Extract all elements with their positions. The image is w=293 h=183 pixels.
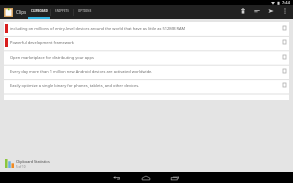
staticText: Every day more than 1 million new Androi… [10, 69, 279, 74]
staticText: Open marketplace for distributing your a… [10, 55, 279, 60]
button[interactable]: OPTIONS [74, 5, 96, 19]
button[interactable]: including on millions of entry-level dev… [4, 21, 289, 35]
staticText: including on millions of entry-level dev… [10, 26, 279, 31]
staticText: OPTIONS [78, 9, 92, 13]
button[interactable]: Share [264, 5, 278, 19]
staticText: Powerful development framework [10, 40, 279, 45]
button[interactable]: CLIPBOARD [28, 5, 50, 19]
button[interactable]: Every day more than 1 million new Androi… [4, 64, 289, 78]
button[interactable]: Sort [250, 5, 264, 19]
staticText: CLIPBOARD [31, 9, 48, 13]
button[interactable]: Copy [279, 50, 289, 64]
staticText: 7:44 [282, 0, 290, 5]
button[interactable]: Copy [279, 35, 289, 49]
button[interactable]: Copy [279, 21, 289, 35]
button[interactable]: Recent apps [168, 172, 182, 183]
button[interactable]: More options [278, 5, 292, 19]
button[interactable]: Delete [236, 5, 250, 19]
button[interactable]: Open marketplace for distributing your a… [4, 50, 289, 64]
button[interactable]: Copy [279, 64, 289, 78]
staticText: Clipboard Statistics [16, 159, 50, 164]
staticText: Clips [16, 9, 27, 15]
button[interactable]: Easily optimize a single binary for phon… [4, 78, 289, 92]
button[interactable]: Home [139, 172, 153, 183]
staticText: Easily optimize a single binary for phon… [10, 83, 279, 88]
button[interactable]: Copy [279, 78, 289, 92]
button[interactable]: Back [110, 172, 124, 183]
button[interactable]: Clipboard Statistics [5, 158, 293, 169]
button[interactable]: SNIPPETS [51, 5, 73, 19]
staticText: 5 of 10 [16, 165, 26, 169]
staticText: SNIPPETS [55, 9, 69, 13]
button[interactable]: Powerful development framework [4, 35, 289, 49]
